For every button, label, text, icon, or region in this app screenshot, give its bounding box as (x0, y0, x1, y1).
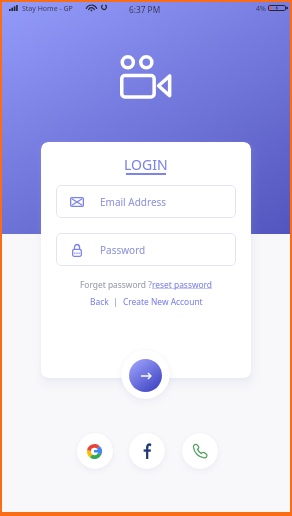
button[interactable]: Sign in with Phone (182, 433, 218, 469)
staticText: Stay Home - GP (22, 4, 73, 14)
staticText: 6:37 PM (129, 4, 161, 15)
button[interactable]: Submit (129, 359, 162, 392)
button[interactable]: reset password (152, 279, 213, 290)
staticText: Forget password ? (80, 279, 152, 290)
button[interactable]: Create New Account (123, 296, 203, 307)
staticText: Password (100, 243, 146, 257)
button[interactable]: Sign in with Google (77, 433, 113, 469)
button[interactable]: Password (56, 233, 236, 266)
staticText: Email Address (100, 195, 167, 209)
staticText: | (109, 296, 123, 307)
staticText: 4% (256, 4, 266, 14)
button[interactable]: Sign in with Facebook (129, 433, 165, 469)
button[interactable]: Email Address (56, 185, 236, 218)
staticText: LOGIN (124, 155, 168, 174)
button[interactable]: Back (90, 296, 109, 307)
